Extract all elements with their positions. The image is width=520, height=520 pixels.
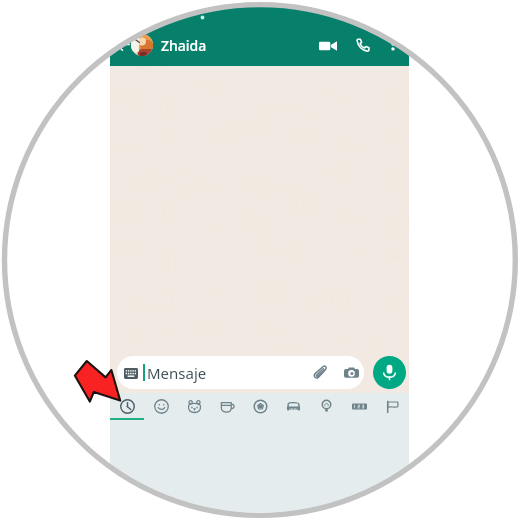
button[interactable]: Activities	[244, 394, 277, 423]
button[interactable]: Recent	[110, 394, 144, 423]
button[interactable]: Contact photo	[131, 34, 153, 56]
button[interactable]: Travel	[277, 394, 310, 423]
button[interactable]: Food and drink	[211, 394, 244, 423]
staticText: Zhaida	[161, 36, 207, 55]
button[interactable]: Video call	[315, 33, 341, 59]
button[interactable]: Flags	[376, 394, 409, 423]
button[interactable]: Camera	[339, 361, 363, 385]
button[interactable]: More options	[382, 33, 404, 55]
button[interactable]: Attach	[309, 361, 333, 385]
staticText: Mensaje	[147, 363, 207, 383]
button[interactable]: Switch to emoji keyboard	[117, 356, 364, 389]
button[interactable]: Symbols	[343, 394, 376, 423]
button[interactable]: Smileys	[144, 394, 178, 423]
button[interactable]: Animals	[178, 394, 211, 423]
button[interactable]: Objects	[310, 394, 343, 423]
button[interactable]: Switch to emoji keyboard	[121, 363, 141, 383]
button[interactable]: Back	[111, 33, 133, 55]
button[interactable]: Voice message	[373, 356, 406, 389]
button[interactable]: Voice call	[351, 33, 375, 57]
